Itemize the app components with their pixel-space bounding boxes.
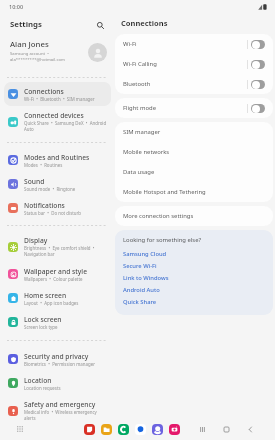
staticText: Notifications bbox=[24, 201, 65, 210]
button[interactable]: Data usage bbox=[115, 162, 273, 182]
staticText: Home screen bbox=[24, 291, 67, 300]
staticText: Samsung account • bbox=[10, 51, 49, 57]
button[interactable]: Calculator bbox=[118, 424, 129, 435]
staticText: Modes • Routines bbox=[24, 162, 63, 168]
staticText: Wi-Fi • Bluetooth • SIM manager bbox=[24, 96, 95, 102]
button[interactable]: Sound bbox=[4, 172, 111, 196]
staticText: Biometrics • Permission manager bbox=[24, 361, 95, 367]
staticText: Connected devices bbox=[24, 111, 84, 120]
staticText: 10:00 bbox=[9, 3, 24, 10]
staticText: Alan Jones bbox=[10, 39, 49, 50]
button[interactable]: Home bbox=[221, 424, 232, 435]
staticText: Safety and emergency bbox=[24, 400, 96, 409]
button[interactable]: Toggle Wi-Fi Calling bbox=[251, 60, 265, 69]
button[interactable]: Toggle Bluetooth bbox=[251, 80, 265, 89]
button[interactable]: Security and privacy bbox=[4, 347, 111, 371]
button[interactable]: Back bbox=[245, 424, 256, 435]
staticText: alerts bbox=[24, 415, 36, 421]
staticText: Connections bbox=[121, 18, 168, 28]
staticText: Modes and Routines bbox=[24, 153, 90, 162]
button[interactable]: Search bbox=[94, 19, 106, 31]
button[interactable]: Wallpaper and style bbox=[4, 262, 111, 286]
staticText: Sound bbox=[24, 177, 45, 186]
button[interactable]: More connection settings bbox=[115, 206, 273, 226]
staticText: Location bbox=[24, 376, 52, 385]
staticText: Screen lock type bbox=[24, 324, 58, 330]
button[interactable]: Connections bbox=[4, 82, 111, 106]
staticText: Navigation bar bbox=[24, 251, 55, 257]
staticText: Connections bbox=[24, 87, 64, 96]
button[interactable]: Notes bbox=[84, 424, 95, 435]
button[interactable]: Quick Share bbox=[123, 296, 157, 308]
staticText: Wi-Fi bbox=[123, 40, 247, 48]
button[interactable]: Secure Wi-Fi bbox=[123, 260, 157, 272]
staticText: Security and privacy bbox=[24, 352, 89, 361]
staticText: Auto bbox=[24, 126, 34, 132]
staticText: Bluetooth bbox=[123, 80, 247, 88]
button[interactable]: Instagram bbox=[169, 424, 180, 435]
button[interactable]: Link to Windows bbox=[123, 272, 169, 284]
button[interactable]: Modes and Routines bbox=[4, 148, 111, 172]
staticText: Mobile networks bbox=[123, 148, 170, 156]
staticText: Quick Share • Samsung DeX • Android bbox=[24, 120, 107, 126]
button[interactable]: Notifications bbox=[4, 196, 111, 220]
button[interactable]: Apps bbox=[15, 424, 25, 434]
staticText: More connection settings bbox=[123, 212, 194, 220]
button[interactable]: Recents bbox=[197, 424, 208, 435]
staticText: Medical info • Wireless emergency bbox=[24, 409, 97, 415]
button[interactable]: Internet bbox=[152, 424, 163, 435]
staticText: Looking for something else? bbox=[123, 236, 202, 244]
button[interactable]: My Files bbox=[101, 424, 112, 435]
staticText: Location requests bbox=[24, 385, 61, 391]
button[interactable]: Wi-Fi bbox=[115, 34, 273, 54]
staticText: Brightness • Eye comfort shield • bbox=[24, 245, 95, 251]
button[interactable]: Toggle Wi-Fi bbox=[251, 40, 265, 49]
staticText: Mobile Hotspot and Tethering bbox=[123, 188, 206, 196]
button[interactable]: Samsung Cloud bbox=[123, 248, 167, 260]
staticText: Status bar • Do not disturb bbox=[24, 210, 82, 216]
button[interactable]: Location bbox=[4, 371, 111, 395]
button[interactable]: Mobile Hotspot and Tethering bbox=[115, 182, 273, 202]
button[interactable]: Toggle Flight mode bbox=[251, 104, 265, 113]
staticText: Layout • App icon badges bbox=[24, 300, 79, 306]
staticText: Lock screen bbox=[24, 315, 62, 324]
staticText: ala*********@hotmail.com bbox=[10, 57, 65, 63]
button[interactable]: Connected devices bbox=[4, 106, 111, 137]
staticText: Wallpapers • Colour palette bbox=[24, 276, 83, 282]
staticText: Wi-Fi Calling bbox=[123, 60, 247, 68]
button[interactable]: Mobile networks bbox=[115, 142, 273, 162]
button[interactable]: Wi-Fi Calling bbox=[115, 54, 273, 74]
button[interactable]: Android Auto bbox=[123, 284, 160, 296]
staticText: Wallpaper and style bbox=[24, 267, 88, 276]
button[interactable]: Flight mode bbox=[115, 98, 273, 118]
button[interactable]: Alan Jones bbox=[0, 36, 113, 73]
staticText: Settings bbox=[10, 19, 42, 30]
staticText: SIM manager bbox=[123, 128, 161, 136]
button[interactable]: Bluetooth bbox=[115, 74, 273, 94]
button[interactable]: Messages bbox=[135, 424, 146, 435]
staticText: Sound mode • Ringtone bbox=[24, 186, 76, 192]
staticText: Flight mode bbox=[123, 104, 247, 112]
button[interactable]: Home screen bbox=[4, 286, 111, 310]
button[interactable]: SIM manager bbox=[115, 122, 273, 142]
button[interactable]: Safety and emergency bbox=[4, 395, 111, 426]
staticText: Data usage bbox=[123, 168, 155, 176]
button[interactable]: Display bbox=[4, 231, 111, 262]
button[interactable]: Lock screen bbox=[4, 310, 111, 334]
staticText: Display bbox=[24, 236, 48, 245]
